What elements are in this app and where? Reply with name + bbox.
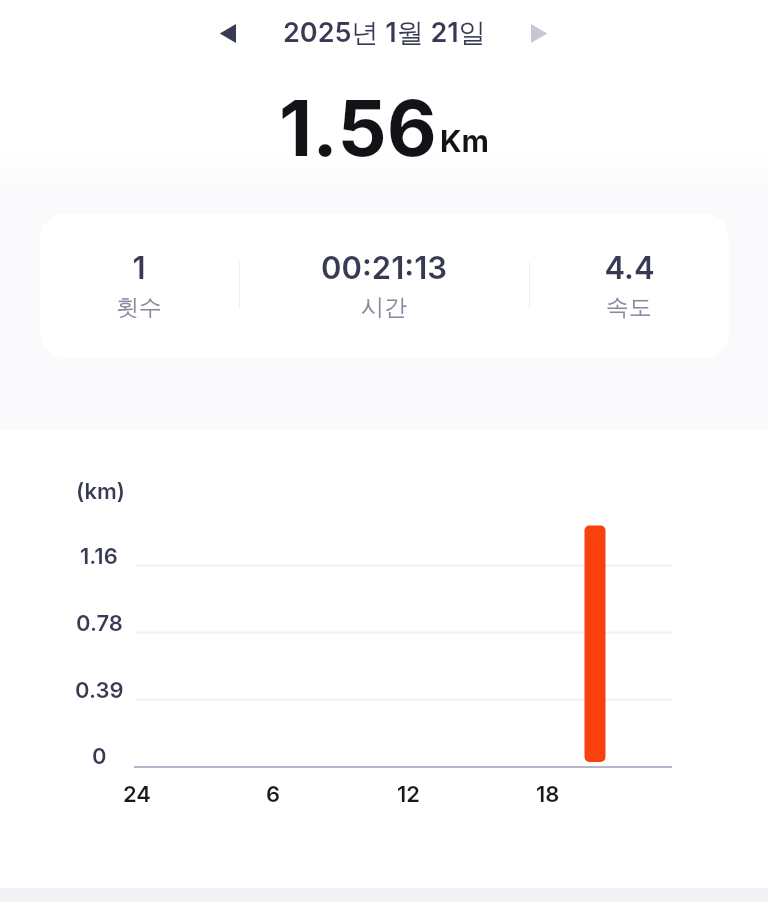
staticText: 1.16 — [80, 543, 118, 570]
button[interactable]: 00:21:13 — [264, 249, 504, 322]
staticText: 2025년 1월 21일 — [283, 16, 486, 50]
staticText: 0 — [92, 743, 107, 770]
staticText: 18 — [536, 781, 560, 808]
staticText: 24 — [123, 781, 152, 808]
staticText: 1.56 — [279, 81, 437, 174]
staticText: 횟수 — [116, 293, 162, 322]
staticText: 0.78 — [76, 610, 123, 637]
staticText: Km — [440, 123, 489, 159]
button[interactable]: 1 — [40, 213, 729, 358]
button[interactable]: 1 — [40, 249, 259, 322]
staticText: 1 — [132, 249, 146, 287]
staticText: 4.4 — [604, 249, 655, 287]
staticText: 00:21:13 — [321, 249, 447, 287]
staticText: 0.39 — [75, 677, 124, 704]
button[interactable]: Next day — [507, 9, 569, 57]
staticText: 6 — [266, 781, 281, 808]
staticText: 속도 — [606, 293, 652, 322]
staticText: 12 — [397, 781, 421, 808]
staticText: (km) — [76, 478, 126, 505]
button[interactable]: 4.4 — [509, 249, 729, 322]
button[interactable]: Previous day — [197, 9, 259, 57]
staticText: 시간 — [361, 293, 407, 322]
